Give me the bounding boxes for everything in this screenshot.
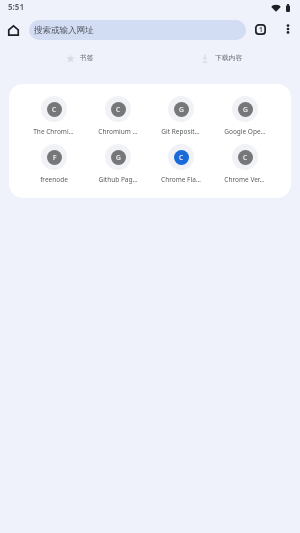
staticText: Chromium … — [98, 127, 138, 136]
button[interactable]: C — [86, 96, 149, 136]
button[interactable]: C — [149, 144, 212, 184]
staticText: Git Reposit… — [161, 127, 200, 136]
staticText: C — [52, 105, 57, 114]
button[interactable]: G — [213, 96, 276, 136]
button[interactable]: Tabs — [250, 19, 270, 39]
button[interactable]: 书签 — [66, 47, 94, 69]
staticText: C — [179, 153, 184, 162]
staticText: The Chromi… — [33, 127, 74, 136]
button[interactable]: G — [86, 144, 149, 184]
staticText: 1 — [259, 25, 263, 34]
staticText: 下载内容 — [215, 53, 243, 62]
staticText: G — [179, 105, 184, 114]
staticText: freenode — [40, 175, 68, 184]
staticText: C — [116, 105, 121, 114]
staticText: F — [53, 153, 57, 162]
staticText: G — [116, 153, 121, 162]
button[interactable]: C — [22, 96, 85, 136]
staticText: G — [243, 105, 248, 114]
button[interactable]: F — [22, 144, 85, 184]
staticText: 5:51 — [8, 1, 24, 12]
button[interactable]: C — [213, 144, 276, 184]
button[interactable]: G — [149, 96, 212, 136]
button[interactable]: 下载内容 — [202, 47, 243, 69]
staticText: Github Pag… — [98, 175, 138, 184]
staticText: Chrome Fla… — [161, 175, 201, 184]
staticText: Chrome Ver… — [224, 175, 265, 184]
button[interactable]: Home — [3, 20, 23, 40]
staticText: C — [243, 153, 248, 162]
staticText: 搜索或输入网址 — [34, 25, 94, 36]
staticText: Google Ope… — [224, 127, 266, 136]
button[interactable]: More options — [278, 19, 298, 39]
button[interactable]: 搜索或输入网址 — [29, 20, 246, 40]
staticText: 书签 — [80, 53, 94, 62]
